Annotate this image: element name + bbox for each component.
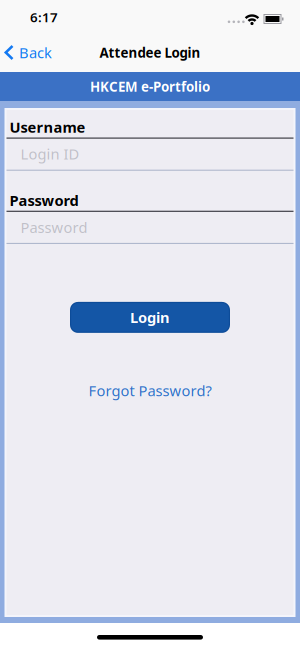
staticText: 6:17 — [30, 8, 58, 26]
staticText: HKCEM e-Portfolio — [90, 78, 210, 95]
staticText: Login ID — [20, 144, 79, 163]
staticText: Username — [9, 117, 85, 137]
staticText: Password — [9, 190, 78, 210]
staticText: Back — [19, 43, 52, 62]
staticText: Password — [20, 218, 87, 237]
staticText: Login — [130, 308, 170, 327]
staticText: Forgot Password? — [88, 381, 211, 400]
staticText: Attendee Login — [99, 44, 200, 61]
